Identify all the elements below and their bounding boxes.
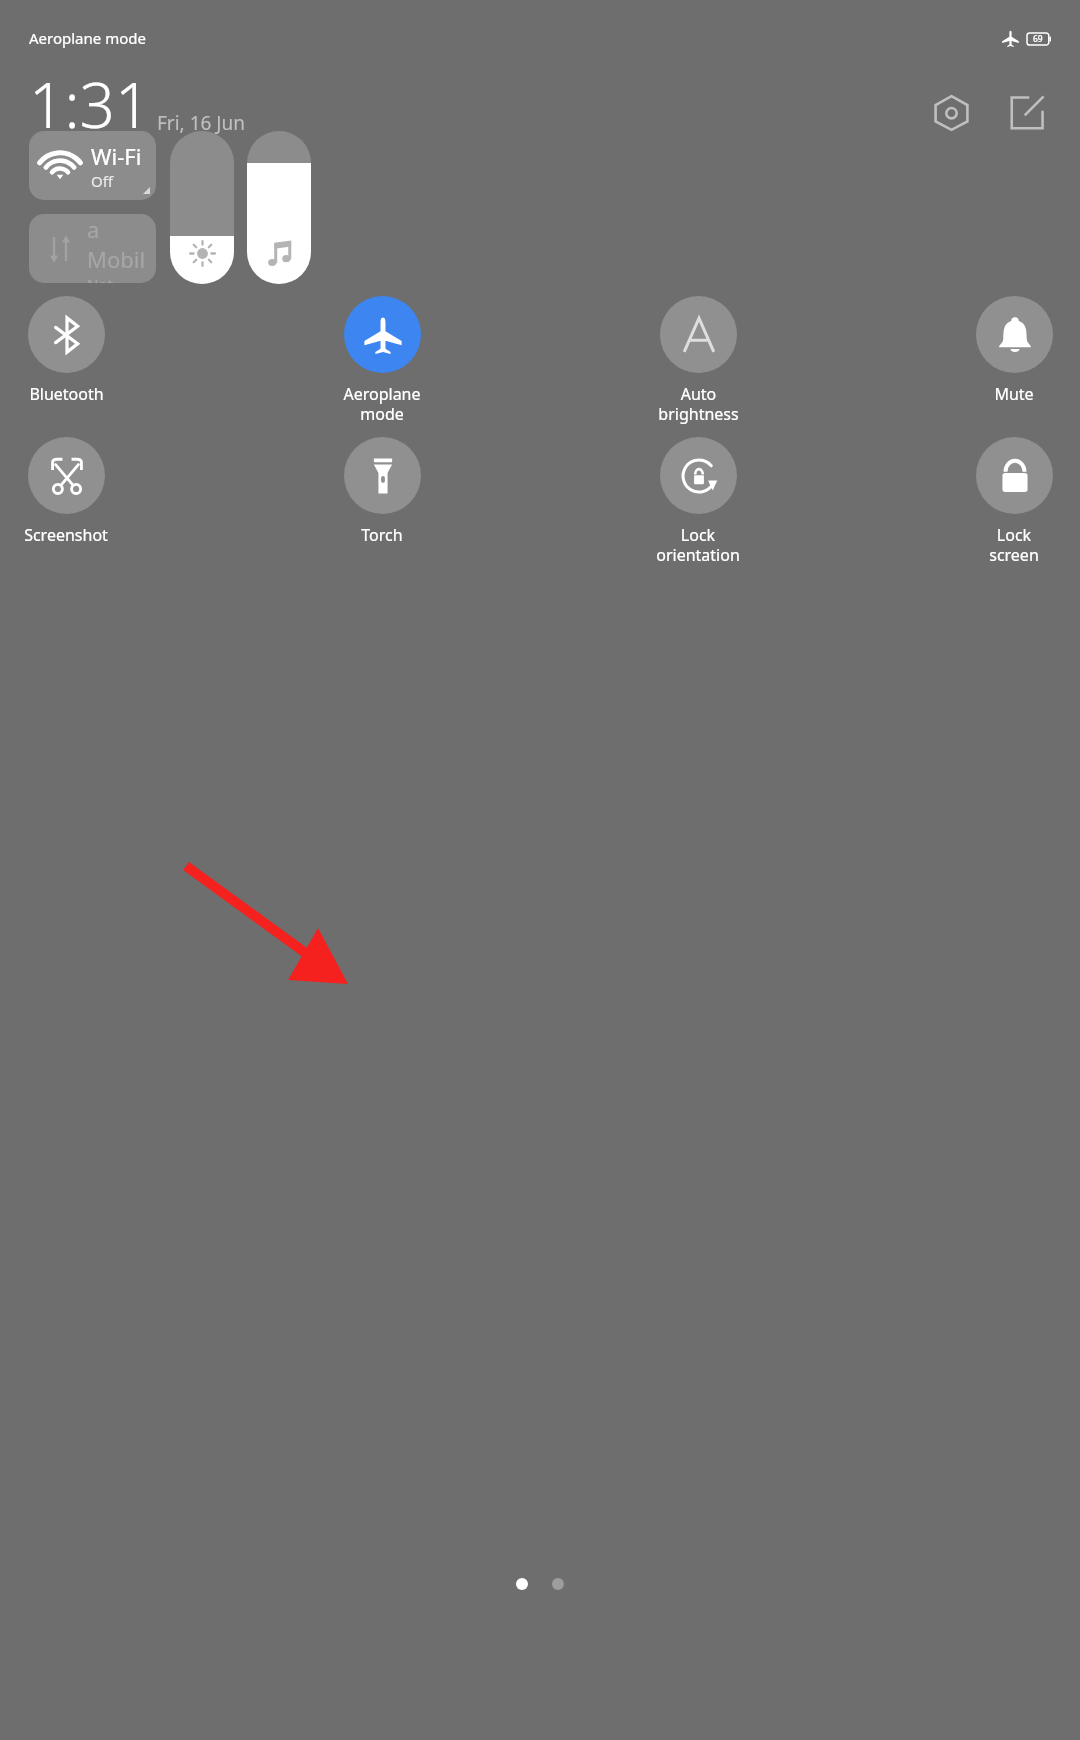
button[interactable]: Aeroplane mode bbox=[334, 296, 430, 424]
staticText: Auto brightness bbox=[658, 383, 739, 424]
staticText: Off bbox=[91, 171, 114, 191]
button[interactable]: Wi-Fi bbox=[29, 131, 156, 200]
staticText: 1:31 bbox=[29, 62, 151, 146]
button[interactable] bbox=[170, 131, 234, 284]
button[interactable]: Torch bbox=[334, 437, 430, 546]
button[interactable]: Mute bbox=[966, 296, 1062, 405]
button[interactable]: Settings bbox=[924, 85, 978, 139]
button[interactable] bbox=[247, 131, 311, 284]
staticText: Aeroplane mode bbox=[343, 383, 421, 424]
staticText: a Mobil bbox=[87, 214, 156, 274]
button[interactable]: Edit bbox=[1000, 85, 1054, 139]
staticText: Lock screen bbox=[989, 524, 1039, 565]
button[interactable]: a Mobil bbox=[29, 214, 156, 283]
button[interactable]: Screenshot bbox=[18, 437, 114, 546]
staticText: Aeroplane mode bbox=[29, 28, 146, 48]
staticText: Screenshot bbox=[24, 524, 108, 546]
staticText: Lock orientation bbox=[656, 524, 740, 565]
staticText: Torch bbox=[361, 524, 403, 546]
staticText: 69 bbox=[1033, 33, 1043, 45]
button[interactable]: Lock screen bbox=[966, 437, 1062, 565]
staticText: Not available bbox=[87, 274, 156, 283]
staticText: Wi-Fi bbox=[91, 141, 142, 171]
button[interactable]: Auto brightness bbox=[650, 296, 746, 424]
button[interactable]: Lock orientation bbox=[650, 437, 746, 565]
staticText: Bluetooth bbox=[29, 383, 104, 405]
staticText: Fri, 16 Jun bbox=[157, 110, 245, 136]
button[interactable]: Bluetooth bbox=[18, 296, 114, 405]
staticText: Mute bbox=[994, 383, 1034, 405]
